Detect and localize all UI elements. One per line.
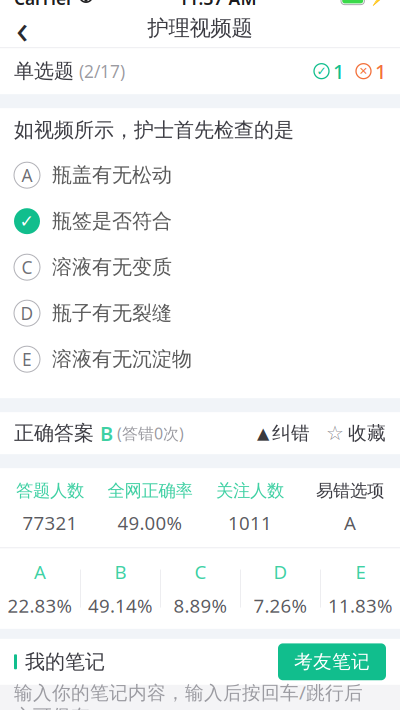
staticText: 7.26% xyxy=(253,593,307,618)
staticText: Carrier xyxy=(14,0,74,10)
staticText: C xyxy=(194,559,206,584)
staticText: 考友笔记 xyxy=(294,650,370,673)
button[interactable]: 考友笔记 xyxy=(278,643,386,680)
staticText: E xyxy=(22,348,32,371)
staticText: D xyxy=(20,302,33,325)
button[interactable]: 输入你的笔记内容，输入后按回车/跳行后方可保存 xyxy=(0,685,400,710)
staticText: ‹ xyxy=(16,2,28,55)
staticText: 关注人数 xyxy=(216,480,284,501)
staticText: 11.83% xyxy=(328,593,393,618)
staticText: C xyxy=(21,256,32,279)
staticText: B xyxy=(114,559,126,584)
staticText: (2/17) xyxy=(74,60,125,83)
button[interactable]: Back xyxy=(0,9,44,47)
staticText: 瓶子有无裂缝 xyxy=(52,301,172,325)
staticText: 77321 xyxy=(22,510,77,535)
staticText: 瓶签是否符合 xyxy=(52,209,172,233)
staticText: 答题人数 xyxy=(16,480,84,501)
staticText: ✓ xyxy=(19,211,34,231)
staticText: ✓ xyxy=(316,64,326,78)
staticText: E xyxy=(355,559,365,584)
staticText: 49.00% xyxy=(117,510,182,535)
staticText: 22.83% xyxy=(7,593,72,618)
staticText: ▲ xyxy=(257,424,269,442)
staticText: 我的笔记 xyxy=(25,649,105,674)
button[interactable]: D xyxy=(0,290,400,336)
staticText: 单选题 xyxy=(14,59,74,83)
staticText: 溶液有无变质 xyxy=(52,255,172,279)
button[interactable]: A xyxy=(0,152,400,198)
staticText: ☆ xyxy=(326,422,344,444)
staticText: 49.14% xyxy=(88,593,153,618)
staticText: 易错选项 xyxy=(316,480,384,501)
staticText: 瓶盖有无松动 xyxy=(52,163,172,187)
button[interactable]: E xyxy=(0,336,400,382)
staticText: 1011 xyxy=(228,510,272,535)
staticText: A xyxy=(21,164,32,187)
staticText: 护理视频题 xyxy=(147,15,252,41)
staticText: 1 xyxy=(375,58,386,84)
staticText: ✕ xyxy=(359,65,368,77)
button[interactable]: ✓ xyxy=(0,198,400,244)
staticText: 收藏 xyxy=(348,422,386,445)
staticText: 溶液有无沉淀物 xyxy=(52,347,192,371)
staticText: A xyxy=(344,510,356,535)
staticText: 正确答案 xyxy=(14,421,100,445)
staticText: B xyxy=(100,420,113,446)
staticText: ⚡ xyxy=(369,0,386,6)
staticText: 1 xyxy=(333,58,344,84)
staticText: D xyxy=(273,559,287,584)
staticText: 11:37 AM xyxy=(178,0,256,10)
button[interactable]: ▲ xyxy=(257,422,310,445)
button[interactable]: ☆ xyxy=(326,422,386,445)
staticText: 全网正确率 xyxy=(107,480,192,501)
staticText: 输入你的笔记内容，输入后按回车/跳行后方可保存 xyxy=(14,680,363,710)
button[interactable]: C xyxy=(0,244,400,290)
staticText: (答错0次) xyxy=(113,422,184,444)
staticText: 如视频所示，护士首先检查的是 xyxy=(14,118,294,142)
staticText: A xyxy=(34,559,46,584)
staticText: 8.89% xyxy=(173,593,227,618)
staticText: 纠错 xyxy=(272,422,310,445)
